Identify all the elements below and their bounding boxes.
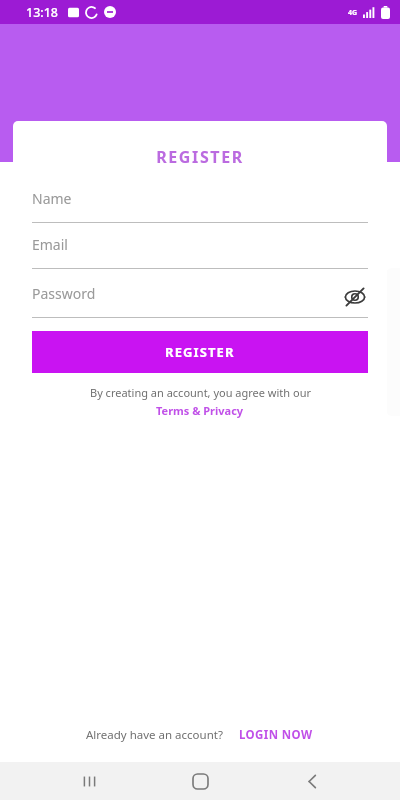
staticText: Password — [32, 284, 96, 303]
button[interactable]: Back — [289, 762, 335, 800]
staticText: Name — [32, 189, 72, 208]
button[interactable]: Password — [32, 284, 368, 318]
button[interactable]: Toggle password visibility — [342, 284, 368, 310]
staticText: LOGIN NOW — [239, 727, 313, 743]
staticText: REGISTER — [13, 146, 387, 168]
button[interactable]: LOGIN NOW — [237, 724, 315, 746]
button[interactable]: REGISTER — [32, 331, 368, 373]
button[interactable]: Terms & Privacy — [156, 403, 244, 418]
button[interactable]: Name — [32, 189, 368, 223]
button[interactable]: Recents — [66, 762, 112, 800]
staticText: Email — [32, 235, 68, 254]
staticText: REGISTER — [165, 343, 235, 361]
staticText: Already have an account? — [86, 727, 223, 743]
staticText: Terms & Privacy — [156, 403, 244, 418]
staticText: 13:18 — [26, 4, 59, 21]
button[interactable]: Home — [177, 762, 223, 800]
button[interactable]: Email — [32, 235, 368, 269]
staticText: By creating an account, you agree with o… — [90, 385, 311, 400]
staticText: 4G — [348, 8, 358, 18]
